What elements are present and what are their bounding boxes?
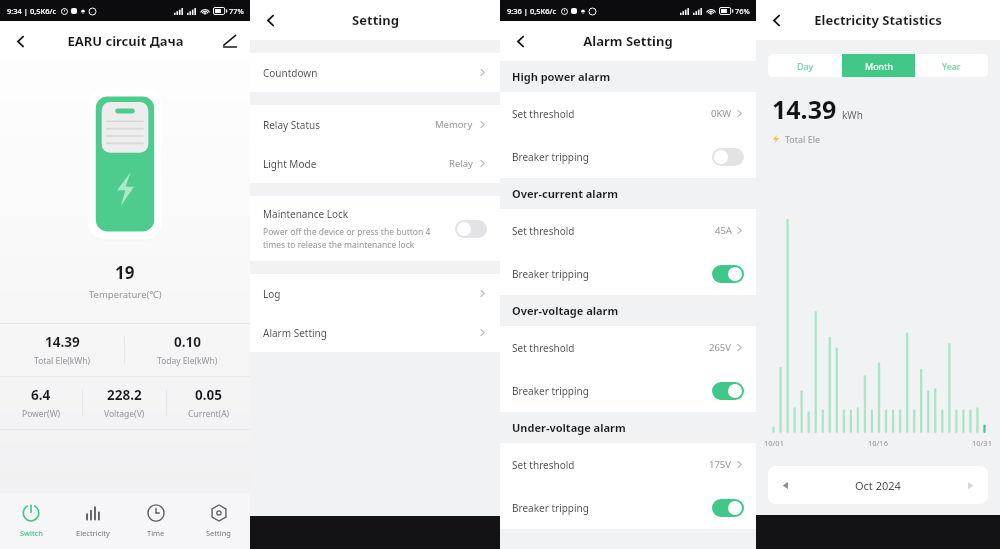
staticText: 265V bbox=[709, 341, 732, 354]
staticText: Electricity bbox=[76, 528, 110, 538]
button[interactable]: Breaker tripping bbox=[500, 135, 756, 178]
other: Previous month bbox=[782, 482, 789, 489]
staticText: 10/31 bbox=[972, 438, 992, 448]
staticText: Switch bbox=[20, 528, 43, 538]
button[interactable]: Back bbox=[500, 21, 540, 61]
staticText: Set threshold bbox=[512, 458, 575, 472]
staticText: Today Ele(kWh) bbox=[157, 355, 218, 367]
button[interactable]: Set threshold bbox=[500, 92, 756, 135]
staticText: 228.2 bbox=[107, 386, 142, 404]
staticText: Breaker tripping bbox=[512, 150, 589, 164]
staticText: Power off the device or press the button… bbox=[263, 226, 431, 250]
button[interactable]: Log bbox=[250, 274, 500, 313]
button[interactable]: Back bbox=[250, 0, 290, 40]
button[interactable]: Disabled bbox=[712, 148, 744, 166]
staticText: 76% bbox=[735, 6, 750, 16]
staticText: Voltage(V) bbox=[104, 408, 145, 420]
staticText: 14.39 bbox=[45, 333, 80, 351]
staticText: Total Ele bbox=[785, 133, 821, 145]
staticText: Set threshold bbox=[512, 224, 575, 238]
button[interactable]: Maintenance Lock bbox=[250, 196, 500, 261]
staticText: Relay bbox=[449, 157, 473, 170]
button[interactable]: Breaker tripping bbox=[500, 486, 756, 529]
staticText: Temperature(℃) bbox=[89, 288, 162, 301]
staticText: Setting bbox=[352, 11, 399, 29]
button[interactable]: Year bbox=[915, 54, 988, 77]
staticText: Over-voltage alarm bbox=[512, 303, 619, 318]
button[interactable]: Enabled bbox=[712, 499, 744, 517]
staticText: kWh bbox=[842, 108, 863, 122]
staticText: 0.05 bbox=[195, 386, 222, 404]
staticText: Light Mode bbox=[263, 157, 317, 171]
staticText: Countdown bbox=[263, 66, 318, 80]
staticText: 19 bbox=[115, 261, 135, 284]
staticText: 10/16 bbox=[868, 438, 888, 448]
staticText: Under-voltage alarm bbox=[512, 420, 626, 435]
button[interactable]: Day bbox=[768, 54, 842, 77]
staticText: Current(A) bbox=[188, 408, 230, 420]
button[interactable]: Time bbox=[124, 493, 187, 549]
staticText: Power(W) bbox=[22, 408, 61, 420]
button[interactable]: Relay Status bbox=[250, 105, 500, 144]
staticText: Log bbox=[263, 287, 281, 301]
staticText: Over-current alarm bbox=[512, 186, 618, 201]
staticText: 9:36 | 0,5K6/c bbox=[507, 6, 557, 16]
staticText: Electricity Statistics bbox=[814, 11, 942, 29]
staticText: Breaker tripping bbox=[512, 384, 589, 398]
button[interactable]: Switch bbox=[0, 493, 62, 549]
staticText: Setting bbox=[206, 528, 231, 538]
staticText: Day bbox=[797, 60, 814, 72]
staticText: 77% bbox=[229, 6, 244, 16]
button[interactable]: Set threshold bbox=[500, 326, 756, 369]
staticText: 6.4 bbox=[31, 386, 51, 404]
staticText: 0KW bbox=[711, 107, 732, 120]
button[interactable]: Set threshold bbox=[500, 209, 756, 252]
staticText: EARU circuit Дача bbox=[67, 32, 184, 50]
staticText: Maintenance Lock bbox=[263, 207, 349, 221]
staticText: Breaker tripping bbox=[512, 501, 589, 515]
staticText: 45A bbox=[715, 224, 732, 237]
button[interactable]: Countdown bbox=[250, 53, 500, 92]
button[interactable]: Enabled bbox=[712, 265, 744, 283]
staticText: Alarm Setting bbox=[583, 32, 673, 50]
button[interactable]: Month bbox=[842, 54, 915, 77]
staticText: 0.10 bbox=[174, 333, 201, 351]
other: Next month bbox=[967, 482, 974, 489]
staticText: Year bbox=[942, 60, 961, 72]
staticText: 175V bbox=[709, 458, 732, 471]
button[interactable]: Setting bbox=[187, 493, 250, 549]
staticText: 10/01 bbox=[764, 438, 784, 448]
staticText: High power alarm bbox=[512, 69, 611, 84]
button[interactable]: Light Mode bbox=[250, 144, 500, 183]
staticText: Alarm Setting bbox=[263, 326, 327, 340]
button[interactable]: Electricity bbox=[62, 493, 124, 549]
staticText: Time bbox=[147, 528, 165, 538]
staticText: 9:34 | 0,5K6/c bbox=[7, 6, 57, 16]
staticText: Relay Status bbox=[263, 118, 321, 132]
button[interactable]: Disabled bbox=[455, 220, 487, 238]
button[interactable]: Breaker tripping bbox=[500, 252, 756, 295]
staticText: Month bbox=[865, 60, 893, 72]
staticText: Set threshold bbox=[512, 107, 575, 121]
staticText: Memory bbox=[435, 118, 473, 131]
staticText: Oct 2024 bbox=[855, 478, 901, 493]
button[interactable]: Back bbox=[0, 21, 40, 61]
button[interactable]: Alarm Setting bbox=[250, 313, 500, 352]
button[interactable]: Edit bbox=[210, 21, 250, 61]
button[interactable]: Breaker tripping bbox=[500, 369, 756, 412]
staticText: Total Ele(kWh) bbox=[34, 355, 91, 367]
button[interactable]: Previous month bbox=[768, 466, 988, 504]
staticText: 14.39 bbox=[772, 92, 837, 126]
staticText: Set threshold bbox=[512, 341, 575, 355]
button[interactable]: Back bbox=[756, 0, 796, 40]
button[interactable]: Enabled bbox=[712, 382, 744, 400]
staticText: Breaker tripping bbox=[512, 267, 589, 281]
button[interactable]: Set threshold bbox=[500, 443, 756, 486]
